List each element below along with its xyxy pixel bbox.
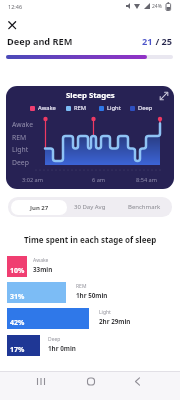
staticText: 21 [142,35,153,48]
staticText: Deep [48,336,61,343]
staticText: Light [12,145,29,154]
staticText: Light [107,104,121,112]
staticText: Awake [33,257,49,264]
button[interactable] [8,21,17,30]
staticText: 8:54 am [136,176,157,184]
staticText: 33min [33,265,53,274]
button[interactable]: Jun 27 [11,200,67,215]
staticText: Deep [12,158,29,167]
staticText: 10% [10,266,25,276]
button[interactable]: 10% [7,256,27,277]
staticText: 3:02 am [22,176,43,184]
staticText: Awake [12,120,33,129]
button[interactable]: 42% [7,308,89,329]
staticText: REM [74,104,87,112]
staticText: 42% [10,318,25,328]
staticText: 24% [152,3,162,10]
staticText: 1hr 50min [76,291,108,300]
button[interactable] [158,90,170,102]
staticText: Deep and REM [7,35,73,48]
staticText: Sleep Stages [66,90,115,101]
staticText: Light [99,309,111,316]
staticText: Time spent in each stage of sleep [24,234,157,245]
staticText: / 25 [153,35,173,48]
staticText: 30 Day Avg [74,203,106,211]
staticText: 17% [10,345,25,355]
button[interactable]: 17% [7,335,40,356]
staticText: 6 am [92,176,106,184]
button[interactable] [36,377,46,386]
button[interactable] [86,377,96,386]
staticText: 2hr 29min [99,317,131,326]
staticText: Benchmark [128,203,161,211]
staticText: Deep [138,104,153,112]
staticText: REM [12,133,27,142]
staticText: 1hr 0min [48,344,76,353]
button[interactable]: 30 Day Avg [62,197,118,217]
staticText: 12:46 [8,3,23,10]
staticText: Awake [38,104,56,112]
button[interactable]: 31% [7,282,66,303]
staticText: 31% [10,292,25,302]
staticText: Jun 27 [30,204,49,212]
staticText: REM [76,283,87,290]
button[interactable]: Benchmark [116,197,172,217]
button[interactable] [134,377,142,386]
